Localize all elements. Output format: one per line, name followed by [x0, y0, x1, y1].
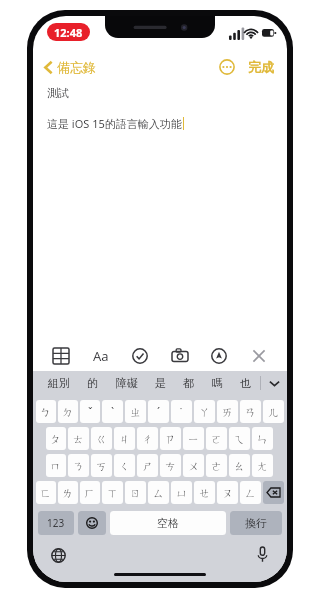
staticText: ㄓ: [130, 405, 142, 419]
staticText: ㄋ: [73, 459, 85, 473]
staticText: ㄩ: [176, 486, 188, 500]
staticText: ㄜ: [211, 459, 223, 473]
button[interactable]: ㄜ: [206, 454, 227, 477]
button[interactable]: ㄊ: [68, 427, 89, 450]
button[interactable]: ㄝ: [194, 481, 215, 504]
button[interactable]: ㄛ: [206, 427, 227, 450]
staticText: 123: [47, 516, 65, 530]
button[interactable]: Expand candidates: [261, 371, 287, 395]
button[interactable]: 備忘錄: [41, 55, 99, 79]
button[interactable]: ˋ: [102, 400, 123, 423]
button[interactable]: ㄖ: [125, 481, 146, 504]
button[interactable]: ㄍ: [91, 427, 112, 450]
staticText: ㄐ: [119, 432, 131, 446]
button[interactable]: ㄓ: [125, 400, 146, 423]
button[interactable]: ˇ: [80, 400, 100, 423]
button[interactable]: 是: [152, 374, 169, 392]
button[interactable]: 嗎: [209, 374, 226, 392]
staticText: ㄝ: [199, 486, 211, 500]
button[interactable]: ㄢ: [240, 400, 261, 423]
button[interactable]: Close keyboard: [247, 344, 271, 368]
staticText: 都: [183, 376, 194, 390]
button[interactable]: 障礙: [113, 374, 141, 392]
button[interactable]: ㄩ: [171, 481, 192, 504]
button[interactable]: Markup: [207, 344, 231, 368]
staticText: 是: [155, 376, 166, 390]
button[interactable]: 空格: [110, 511, 226, 535]
staticText: ˊ: [157, 404, 161, 419]
staticText: ㄢ: [245, 405, 257, 419]
button[interactable]: Dictation: [251, 544, 273, 566]
button[interactable]: ㄉ: [58, 400, 78, 423]
button[interactable]: Emoji: [78, 511, 106, 535]
staticText: ㄔ: [142, 432, 154, 446]
button[interactable]: 完成: [245, 55, 277, 79]
staticText: ㄞ: [222, 405, 234, 419]
button[interactable]: ㄙ: [148, 481, 169, 504]
button[interactable]: 都: [180, 374, 197, 392]
button[interactable]: 的: [84, 374, 101, 392]
button[interactable]: 也: [237, 374, 254, 392]
button[interactable]: ㄏ: [80, 481, 100, 504]
staticText: ㄘ: [165, 459, 177, 473]
staticText: ㄖ: [130, 486, 142, 500]
staticText: 空格: [157, 516, 179, 530]
staticText: ㄤ: [257, 459, 269, 473]
staticText: ㄏ: [84, 486, 96, 500]
button[interactable]: ㄇ: [46, 454, 66, 477]
button[interactable]: ㄐ: [114, 427, 135, 450]
button[interactable]: Backspace: [263, 481, 284, 504]
button[interactable]: 123: [38, 511, 74, 535]
button[interactable]: ㄋ: [68, 454, 89, 477]
staticText: ㄨ: [188, 459, 200, 473]
button[interactable]: ㄦ: [263, 400, 284, 423]
button[interactable]: Aa: [89, 344, 113, 368]
button[interactable]: ㄅ: [36, 400, 56, 423]
button[interactable]: Switch keyboard: [47, 544, 69, 566]
staticText: 組別: [48, 376, 70, 390]
button[interactable]: ㄥ: [240, 481, 261, 504]
staticText: ㄒ: [107, 486, 119, 500]
staticText: ㄑ: [119, 459, 131, 473]
button[interactable]: ㄎ: [91, 454, 112, 477]
button[interactable]: ㄡ: [217, 481, 238, 504]
button[interactable]: ㄤ: [252, 454, 273, 477]
staticText: Aa: [93, 347, 109, 365]
button[interactable]: ㄌ: [58, 481, 78, 504]
staticText: ㄡ: [222, 486, 234, 500]
button[interactable]: ㄟ: [229, 427, 250, 450]
button[interactable]: Camera: [168, 344, 192, 368]
button[interactable]: ㄑ: [114, 454, 135, 477]
button[interactable]: ㄨ: [183, 454, 204, 477]
button[interactable]: ㄧ: [183, 427, 204, 450]
button[interactable]: More options: [216, 56, 238, 78]
staticText: 嗎: [212, 376, 223, 390]
staticText: ㄊ: [73, 432, 85, 446]
button[interactable]: ㄘ: [160, 454, 181, 477]
button[interactable]: ㄈ: [36, 481, 56, 504]
button[interactable]: ˙: [171, 400, 192, 423]
staticText: ㄕ: [142, 459, 154, 473]
button[interactable]: ㄠ: [229, 454, 250, 477]
button[interactable]: Checklist: [128, 344, 152, 368]
button[interactable]: ㄆ: [46, 427, 66, 450]
button[interactable]: 組別: [45, 374, 73, 392]
staticText: ㄣ: [257, 432, 269, 446]
staticText: ㄅ: [40, 405, 52, 419]
button[interactable]: ㄒ: [102, 481, 123, 504]
button[interactable]: 換行: [230, 511, 282, 535]
button[interactable]: ㄣ: [252, 427, 273, 450]
button[interactable]: ˊ: [148, 400, 169, 423]
staticText: ㄦ: [268, 405, 280, 419]
staticText: ㄆ: [50, 432, 62, 446]
button[interactable]: ㄚ: [194, 400, 215, 423]
staticText: 也: [240, 376, 251, 390]
button[interactable]: ㄕ: [137, 454, 158, 477]
staticText: ㄟ: [234, 432, 246, 446]
button[interactable]: ㄗ: [160, 427, 181, 450]
button[interactable]: ㄔ: [137, 427, 158, 450]
staticText: ㄗ: [165, 432, 177, 446]
button[interactable]: ㄞ: [217, 400, 238, 423]
staticText: 障礙: [116, 376, 138, 390]
button[interactable]: Table: [49, 344, 73, 368]
